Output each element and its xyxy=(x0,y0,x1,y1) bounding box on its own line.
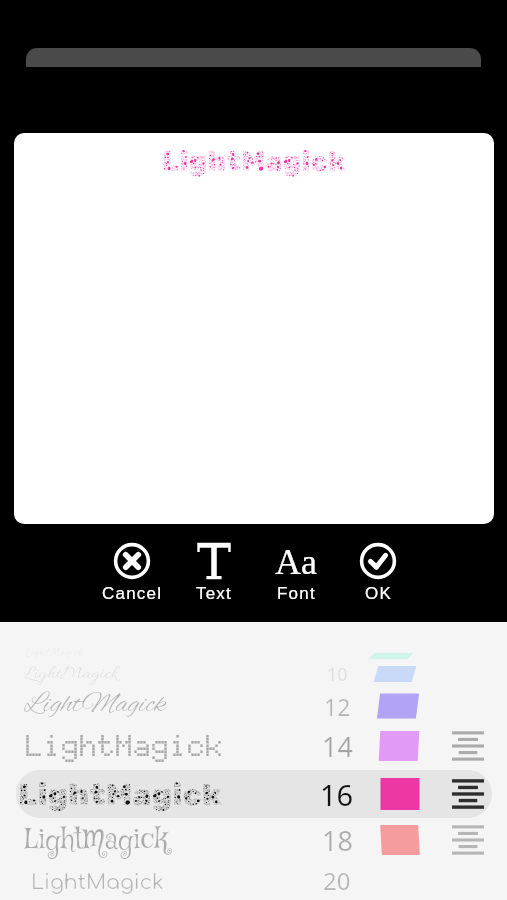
button[interactable]: LightMagick xyxy=(24,818,304,862)
button[interactable]: LightMagick xyxy=(24,652,304,696)
button[interactable]: Font xyxy=(255,542,337,603)
button[interactable]: Colour xyxy=(370,770,430,818)
staticText: 12 xyxy=(324,691,351,722)
button[interactable]: LightMagick xyxy=(31,860,311,900)
button[interactable]: LightMagick xyxy=(26,723,306,767)
button[interactable]: 12 xyxy=(312,684,362,728)
staticText: LightMagick xyxy=(31,871,164,894)
other: Font xyxy=(272,542,320,580)
button[interactable]: Align center xyxy=(452,778,484,810)
staticText: Aa xyxy=(275,542,317,580)
staticText: LightMagick xyxy=(24,662,118,687)
button[interactable]: Colour xyxy=(370,816,430,864)
staticText: Text xyxy=(196,584,232,603)
staticText: LightMagick xyxy=(24,686,167,724)
button[interactable]: Align center xyxy=(452,730,484,762)
staticText: Cancel xyxy=(102,584,163,603)
button[interactable]: 10 xyxy=(312,652,362,696)
button[interactable]: Colour xyxy=(361,632,421,680)
button[interactable]: Colour xyxy=(368,682,428,730)
button[interactable]: Text xyxy=(173,542,255,603)
staticText: 10 xyxy=(327,662,348,687)
button[interactable]: 16 xyxy=(312,772,362,816)
staticText: LightMagick xyxy=(18,776,222,813)
staticText: LightMagick xyxy=(26,727,224,763)
staticText: 16 xyxy=(320,775,354,814)
staticText: LightMagick xyxy=(24,821,169,859)
other: OK xyxy=(359,542,397,580)
staticText: Font xyxy=(277,584,316,603)
button[interactable]: LightMagick xyxy=(14,133,494,524)
staticText: 20 xyxy=(323,864,351,897)
staticText: OK xyxy=(365,584,392,603)
button[interactable]: Toolbar xyxy=(26,48,481,67)
button[interactable]: Colour xyxy=(365,650,425,698)
button[interactable]: LightMagick xyxy=(18,772,298,816)
other: Text xyxy=(195,542,233,580)
button[interactable]: 20 xyxy=(312,858,362,900)
staticText: 14 xyxy=(322,728,353,765)
button[interactable]: Colour xyxy=(369,722,429,770)
staticText: LightMagick xyxy=(14,145,494,178)
button[interactable]: 14 xyxy=(312,724,362,768)
button[interactable]: LightMagick xyxy=(24,683,304,727)
button[interactable]: OK xyxy=(337,542,419,603)
button[interactable]: 18 xyxy=(312,818,362,862)
staticText: 18 xyxy=(322,822,353,859)
other: Cancel xyxy=(113,542,151,580)
button[interactable]: Cancel xyxy=(91,542,173,603)
button[interactable]: Align center xyxy=(452,824,484,856)
